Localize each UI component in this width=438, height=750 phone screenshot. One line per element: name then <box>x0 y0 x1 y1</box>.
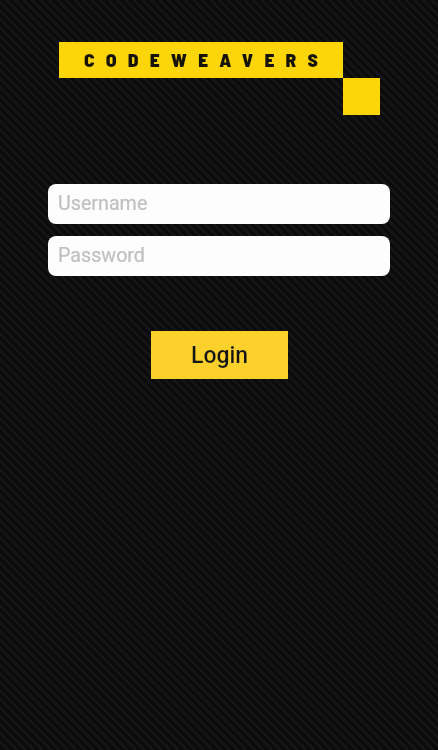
button[interactable]: Username <box>48 184 390 224</box>
staticText: Username <box>58 192 148 215</box>
staticText: CODEWEAVERS <box>84 47 330 70</box>
staticText: Login <box>191 342 249 369</box>
staticText: Password <box>58 244 145 267</box>
button[interactable]: Login <box>151 331 288 379</box>
button[interactable]: Password <box>48 236 390 276</box>
